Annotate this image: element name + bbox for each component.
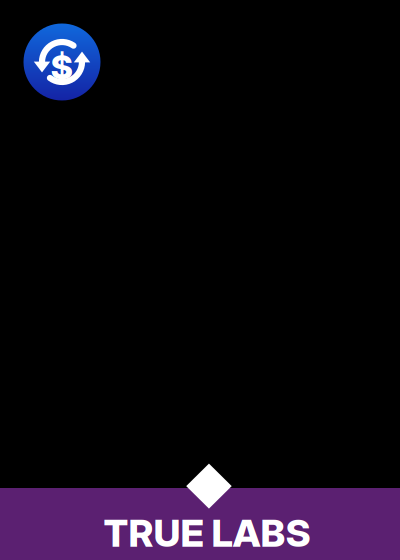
button[interactable]: Currency exchange app icon <box>23 23 101 101</box>
staticText: TRUE LABS <box>103 510 310 556</box>
staticText: $ <box>50 46 73 87</box>
